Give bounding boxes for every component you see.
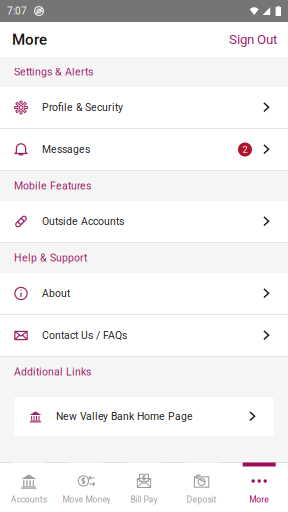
staticText: Profile & Security bbox=[42, 101, 123, 114]
button[interactable]: Sign Out bbox=[229, 26, 277, 53]
staticText: Settings & Alerts bbox=[14, 66, 93, 78]
button[interactable]: Profile & Security bbox=[0, 87, 288, 129]
staticText: Mobile Features bbox=[14, 180, 91, 192]
button[interactable]: Accounts bbox=[0, 462, 58, 512]
button[interactable]: New Valley Bank Home Page bbox=[14, 397, 274, 436]
staticText: Messages bbox=[42, 143, 90, 156]
button[interactable]: About bbox=[0, 273, 288, 315]
staticText: 2 bbox=[242, 144, 247, 155]
staticText: Sign Out bbox=[229, 32, 277, 47]
button[interactable]: Move Money bbox=[58, 462, 115, 512]
staticText: Bill Pay bbox=[130, 494, 157, 504]
staticText: 7:07 bbox=[7, 5, 27, 17]
staticText: Accounts bbox=[11, 494, 47, 504]
staticText: Help & Support bbox=[14, 252, 87, 264]
staticText: New Valley Bank Home Page bbox=[56, 410, 193, 423]
staticText: Move Money bbox=[62, 494, 110, 504]
staticText: Contact Us / FAQs bbox=[42, 329, 127, 342]
button[interactable]: More bbox=[230, 462, 288, 512]
button[interactable]: Contact Us / FAQs bbox=[0, 315, 288, 357]
button[interactable]: Deposit bbox=[173, 462, 230, 512]
staticText: Additional Links bbox=[14, 366, 91, 378]
staticText: More bbox=[12, 31, 47, 48]
staticText: About bbox=[42, 287, 70, 300]
button[interactable]: Bill Pay bbox=[115, 462, 173, 512]
staticText: Deposit bbox=[187, 494, 217, 504]
button[interactable]: Messages bbox=[0, 129, 288, 171]
staticText: Outside Accounts bbox=[42, 215, 124, 228]
button[interactable]: Outside Accounts bbox=[0, 201, 288, 243]
staticText: More bbox=[249, 494, 269, 504]
